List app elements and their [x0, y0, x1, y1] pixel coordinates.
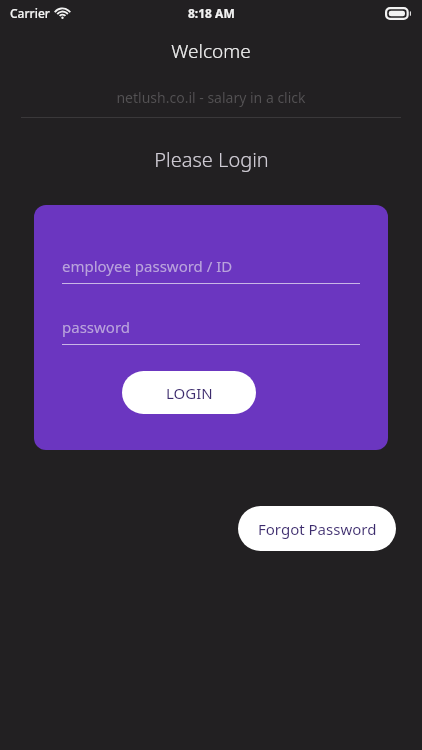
other: Battery full — [385, 7, 412, 20]
staticText: LOGIN — [166, 383, 213, 403]
button[interactable]: LOGIN — [122, 371, 256, 414]
staticText: Please Login — [154, 146, 269, 173]
staticText: netlush.co.il - salary in a click — [116, 88, 306, 107]
button[interactable]: password — [62, 310, 360, 344]
button[interactable]: Forgot Password — [238, 506, 396, 551]
staticText: 8:18 AM — [188, 5, 235, 21]
button[interactable]: employee password / ID — [62, 249, 360, 283]
staticText: Carrier — [10, 5, 50, 21]
staticText: Welcome — [171, 38, 251, 64]
staticText: employee password / ID — [62, 256, 233, 276]
staticText: password — [62, 317, 130, 337]
staticText: Forgot Password — [258, 519, 377, 539]
other: Wi-Fi signal — [55, 8, 70, 19]
